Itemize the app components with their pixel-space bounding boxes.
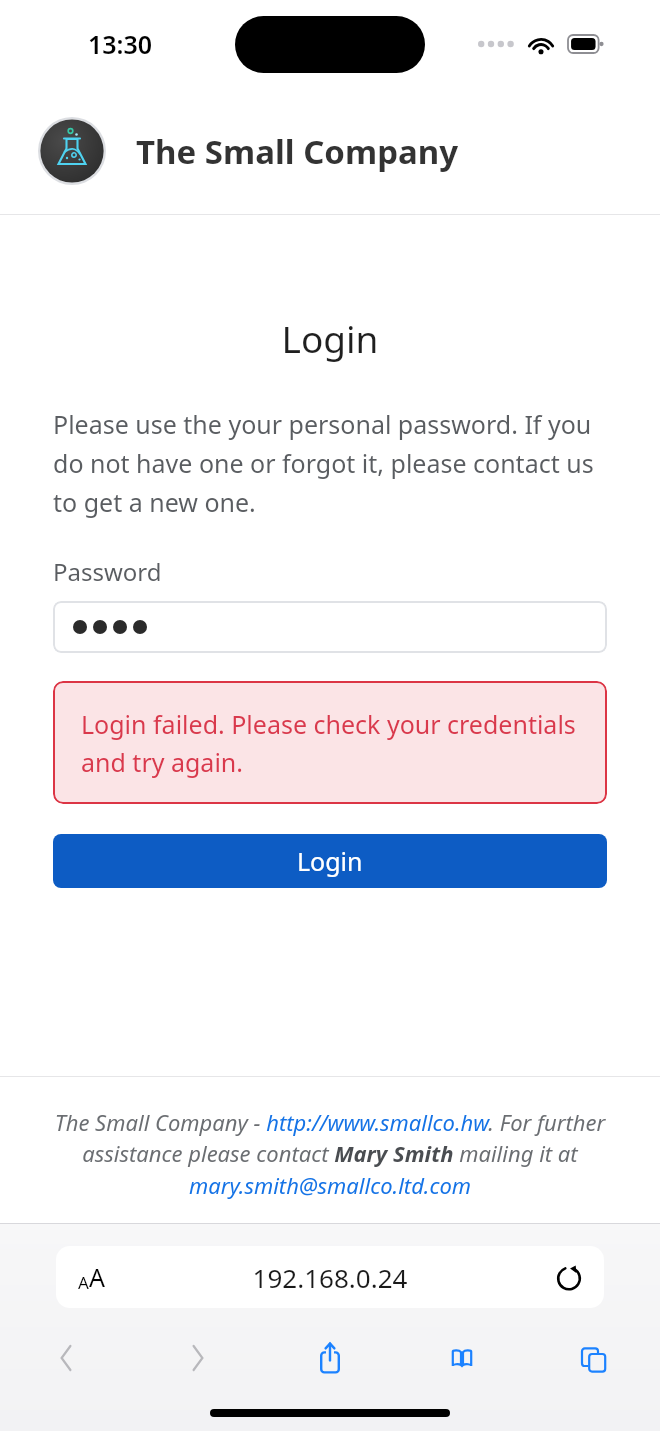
button[interactable] <box>53 601 607 653</box>
staticText: 13:30 <box>88 27 153 61</box>
staticText: Login failed. Please check your credenti… <box>81 707 579 779</box>
staticText: A <box>78 1271 89 1294</box>
staticText: The Small Company - http://www.smallco.h… <box>48 1107 612 1201</box>
staticText: Password <box>53 555 162 588</box>
staticText: Login <box>297 844 363 878</box>
staticText: 192.168.0.24 <box>126 1260 534 1295</box>
button[interactable]: Text size <box>56 1246 126 1308</box>
button[interactable]: Login <box>53 834 607 888</box>
button[interactable]: Back <box>0 1322 132 1394</box>
button[interactable]: Share <box>264 1322 396 1394</box>
staticText: A <box>89 1260 105 1294</box>
button[interactable]: Text size <box>56 1246 604 1308</box>
button[interactable]: Forward <box>132 1322 264 1394</box>
button[interactable]: Bookmarks <box>396 1322 528 1394</box>
staticText: The Small Company <box>136 129 459 174</box>
staticText: Please use the your personal password. I… <box>53 407 607 519</box>
button[interactable]: Tabs <box>528 1322 660 1394</box>
staticText: Login <box>0 313 660 363</box>
button[interactable]: Reload <box>534 1246 604 1308</box>
